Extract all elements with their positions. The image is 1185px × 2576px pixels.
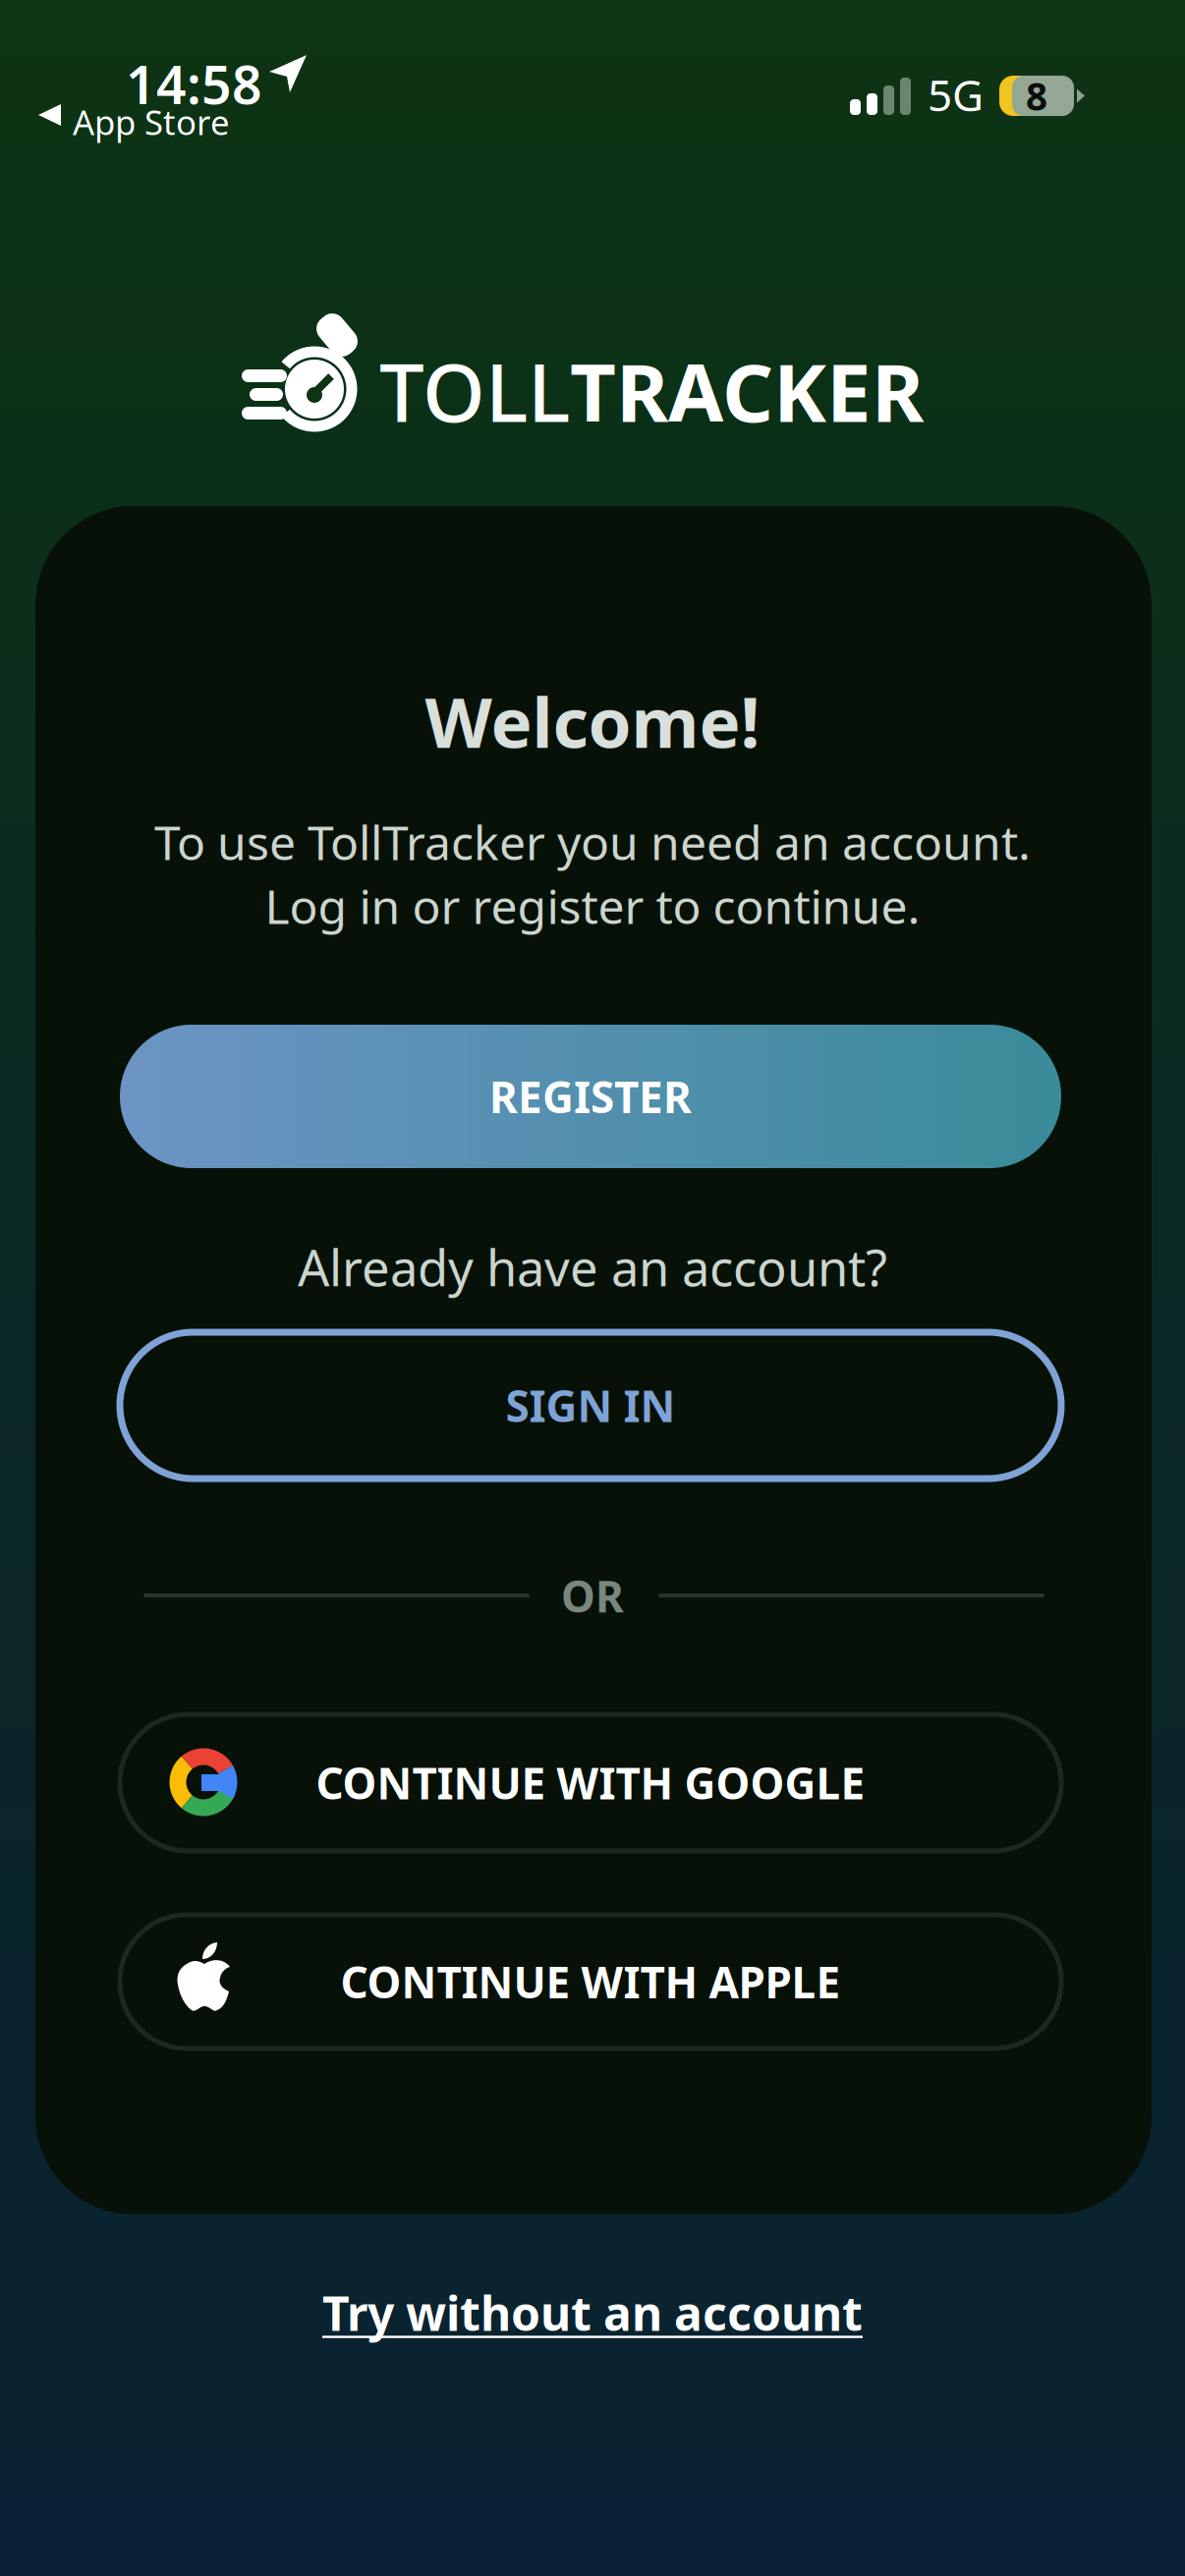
button[interactable]: Try without an account [0, 2273, 1185, 2352]
staticText: TOLLTRACKER [379, 338, 924, 444]
staticText: CONTINUE WITH GOOGLE [316, 1754, 865, 1811]
staticText: CONTINUE WITH APPLE [340, 1953, 841, 2010]
staticText: REGISTER [489, 1068, 692, 1125]
button[interactable]: SIGN IN [120, 1332, 1061, 1479]
staticText: Log in or register to continue. [265, 874, 920, 937]
button[interactable]: REGISTER [120, 1025, 1061, 1168]
button[interactable]: CONTINUE WITH APPLE [120, 1915, 1061, 2048]
staticText: Already have an account? [298, 1234, 887, 1300]
staticText: 14:58 [126, 49, 262, 119]
staticText: To use TollTracker you need an account. [154, 811, 1031, 873]
staticText: 5G [928, 66, 984, 123]
staticText: OR [561, 1567, 624, 1624]
staticText: 8 [1026, 71, 1047, 121]
staticText: App Store [73, 99, 230, 144]
staticText: Try without an account [322, 2281, 863, 2344]
button[interactable]: CONTINUE WITH GOOGLE [120, 1714, 1061, 1851]
staticText: SIGN IN [506, 1377, 676, 1434]
staticText: Welcome! [425, 675, 760, 767]
